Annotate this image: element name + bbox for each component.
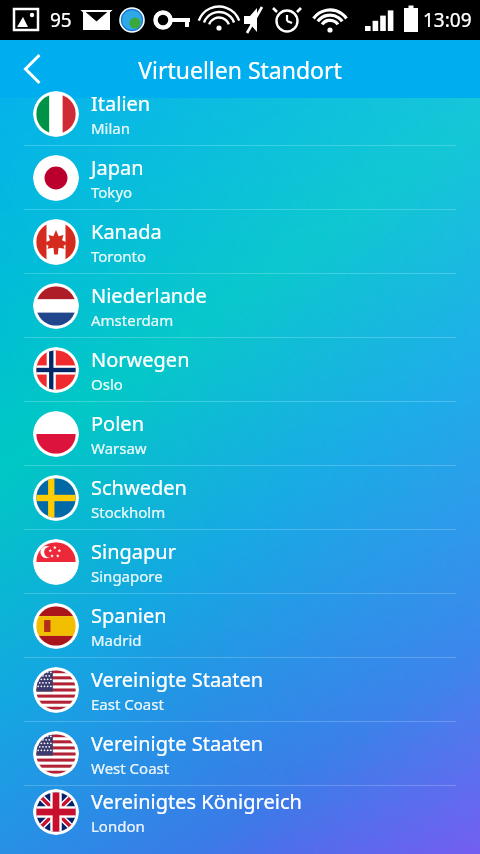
staticText: Norwegen: [91, 346, 190, 373]
button[interactable]: Singapur: [0, 530, 480, 593]
staticText: Italien: [91, 90, 151, 117]
staticText: East Coast: [91, 694, 164, 714]
staticText: Kanada: [91, 218, 162, 245]
staticText: West Coast: [91, 758, 170, 778]
button[interactable]: Back: [0, 40, 58, 98]
button[interactable]: Kanada: [0, 210, 480, 273]
staticText: Amsterdam: [91, 310, 174, 330]
staticText: Japan: [91, 154, 144, 181]
staticText: 95: [50, 7, 72, 33]
staticText: Polen: [91, 410, 144, 437]
staticText: Madrid: [91, 630, 142, 650]
staticText: London: [91, 816, 145, 836]
button[interactable]: Niederlande: [0, 274, 480, 337]
button[interactable]: Vereinigte Staaten: [0, 722, 480, 785]
staticText: Vereinigtes Königreich: [91, 788, 302, 815]
button[interactable]: Japan: [0, 146, 480, 209]
staticText: Vereinigte Staaten: [91, 666, 264, 693]
button[interactable]: Italien: [0, 82, 480, 145]
staticText: Toronto: [91, 246, 147, 266]
staticText: 13:09: [423, 7, 472, 33]
button[interactable]: Spanien: [0, 594, 480, 657]
staticText: Vereinigte Staaten: [91, 730, 264, 757]
staticText: Spanien: [91, 602, 167, 629]
button[interactable]: Schweden: [0, 466, 480, 529]
staticText: Virtuellen Standort: [138, 54, 342, 85]
button[interactable]: Polen: [0, 402, 480, 465]
staticText: Stockholm: [91, 502, 166, 522]
staticText: Schweden: [91, 474, 187, 501]
staticText: Milan: [91, 118, 131, 138]
button[interactable]: Vereinigtes Königreich: [0, 786, 480, 838]
button[interactable]: Norwegen: [0, 338, 480, 401]
button[interactable]: Vereinigte Staaten: [0, 658, 480, 721]
staticText: Singapore: [91, 566, 163, 586]
staticText: Niederlande: [91, 282, 207, 309]
staticText: Warsaw: [91, 438, 147, 458]
staticText: Oslo: [91, 374, 123, 394]
staticText: Singapur: [91, 538, 176, 565]
staticText: Tokyo: [91, 182, 133, 202]
